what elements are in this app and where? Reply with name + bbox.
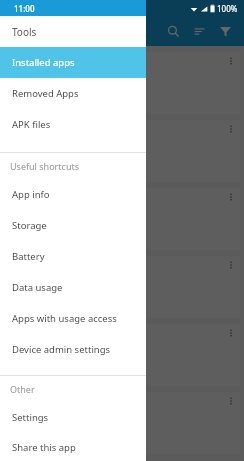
button[interactable]: More options — [222, 188, 240, 206]
staticText: Apps with usage access — [12, 312, 117, 325]
staticText: k.fruitninjax, version code: , app size:… — [10, 145, 63, 176]
button[interactable]: Storage — [0, 210, 146, 241]
button[interactable]: k.fruitninjax, version code: , app size:… — [4, 120, 240, 182]
staticText: Battery — [12, 250, 45, 263]
button[interactable]: More options — [222, 256, 240, 274]
button[interactable]: More options — [222, 120, 240, 138]
button[interactable]: More options — [222, 324, 240, 342]
button[interactable]: APK files — [0, 109, 146, 140]
staticText: d.badland, version code: 45, app size: — [10, 77, 60, 108]
button[interactable]: Installed apps — [0, 47, 146, 78]
button[interactable]: Sort — [186, 18, 212, 44]
staticText: Share this app — [12, 441, 76, 454]
staticText: e, date n code: 4 (107756), — [10, 417, 52, 448]
button[interactable]: Battery — [0, 241, 146, 272]
staticText: Useful shortcuts — [10, 160, 80, 172]
button[interactable]: More options — [222, 392, 240, 410]
staticText: Installed apps — [12, 56, 75, 69]
button[interactable]: d.badland, version code: 45, app size: — [4, 52, 240, 114]
staticText: APK files — [12, 118, 51, 131]
staticText: date installed: 27121, version B — [10, 349, 65, 380]
button[interactable]: Settings — [0, 402, 146, 433]
staticText: Device admin settings — [12, 343, 111, 356]
button[interactable]: date installed: 27121, version B — [4, 324, 240, 386]
button[interactable]: b.evopop, date n code: 37, e: 169 MB — [4, 188, 240, 250]
button[interactable]: Data usage — [0, 272, 146, 303]
staticText: b.evopop, date n code: 37, e: 169 MB — [10, 213, 67, 244]
staticText: Data usage — [12, 281, 63, 294]
button[interactable]: Device admin settings — [0, 334, 146, 365]
button[interactable]: Apps with usage access — [0, 303, 146, 334]
staticText: Removed Apps — [12, 87, 79, 100]
staticText: Other — [10, 383, 35, 395]
button[interactable]: tion.puzzle, version code: p size: 142 M… — [4, 256, 240, 318]
staticText: tion.puzzle, version code: p size: 142 M… — [10, 281, 64, 312]
staticText: App info — [12, 188, 50, 201]
staticText: Settings — [12, 411, 49, 424]
button[interactable]: Search — [160, 18, 186, 44]
staticText: 100% — [217, 3, 238, 14]
staticText: Storage — [12, 219, 47, 232]
button[interactable]: Removed Apps — [0, 78, 146, 109]
button[interactable]: e, date n code: 4 (107756), — [4, 392, 240, 454]
button[interactable]: Filter — [212, 18, 238, 44]
button[interactable]: More options — [222, 52, 240, 70]
button[interactable]: App info — [0, 179, 146, 210]
button[interactable]: Share this app — [0, 433, 146, 461]
staticText: Tools — [12, 25, 37, 39]
staticText: 11:00 — [14, 3, 35, 14]
